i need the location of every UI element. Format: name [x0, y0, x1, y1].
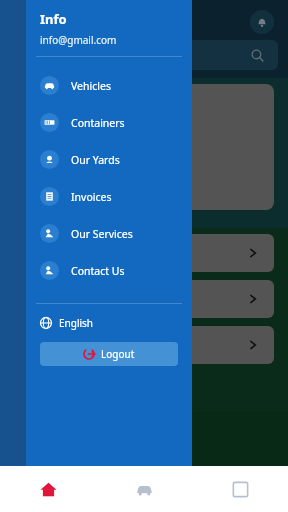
staticText: English: [59, 316, 94, 330]
button[interactable]: Vehicles: [26, 67, 192, 104]
button[interactable]: Total Price : $167.0: [74, 84, 274, 210]
button[interactable]: Containers: [26, 104, 192, 141]
button[interactable]: Invoices: [26, 178, 192, 215]
staticText: Damage Claim: [50, 288, 86, 311]
button[interactable]: More: [192, 466, 288, 512]
button[interactable]: Pricing Export: [40, 326, 274, 364]
button[interactable]: English: [26, 314, 192, 332]
staticText: Our Services: [71, 227, 133, 241]
staticText: Vehicles: [71, 79, 111, 93]
button[interactable]: Notifications: [250, 10, 274, 34]
button[interactable]: Logout: [40, 342, 178, 366]
button[interactable]: Home: [0, 466, 96, 512]
staticText: Due : $167.0: [86, 160, 145, 174]
staticText: Contact Us: [71, 264, 125, 278]
button[interactable]: [108, 40, 278, 70]
staticText: Our Yards: [71, 153, 120, 167]
staticText: Invoices: [71, 190, 112, 204]
staticText: Containers: [71, 116, 125, 130]
button[interactable]: Vehicles: [96, 466, 192, 512]
staticText: Logout: [101, 347, 135, 361]
button[interactable]: Our Yards: [26, 141, 192, 178]
staticText: Total Price : $167.0: [86, 120, 174, 134]
staticText: Info: [40, 10, 67, 28]
button[interactable]: Contact Us: [26, 252, 192, 289]
button[interactable]: Our Services: [26, 215, 192, 252]
staticText: Pricing Export: [50, 334, 80, 357]
button[interactable]: Voucher: [40, 234, 274, 272]
staticText: info@gmail.com: [40, 33, 117, 47]
button[interactable]: Damage Claim: [40, 280, 274, 318]
